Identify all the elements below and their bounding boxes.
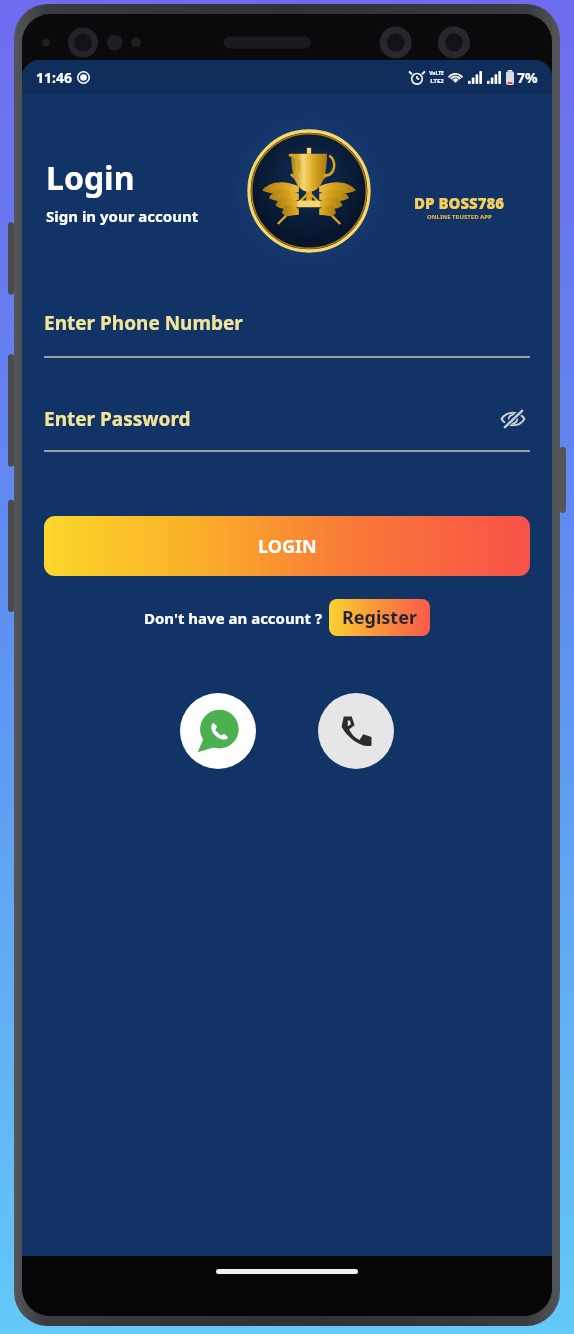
staticText: VoLTE [429,70,444,77]
button[interactable]: LOGIN [44,516,530,576]
staticText: Login [46,156,135,200]
button[interactable]: Register [329,599,430,636]
staticText: 11:46 [36,68,72,87]
staticText: 7% [517,68,538,87]
staticText: ONLINE TRUSTED APP [427,213,492,221]
staticText: Enter Password [44,406,496,432]
staticText: DP BOSS786 [414,193,505,213]
staticText: Enter Phone Number [44,310,530,336]
staticText: LTE2 [430,77,444,85]
staticText: Sign in your account [46,206,199,226]
staticText: Register [342,605,417,630]
staticText: Don't have an account ? [144,608,323,628]
button[interactable]: WhatsApp [180,693,256,769]
button[interactable]: Toggle password visibility [496,402,530,436]
staticText: LOGIN [258,534,317,559]
button[interactable]: Call [318,693,394,769]
